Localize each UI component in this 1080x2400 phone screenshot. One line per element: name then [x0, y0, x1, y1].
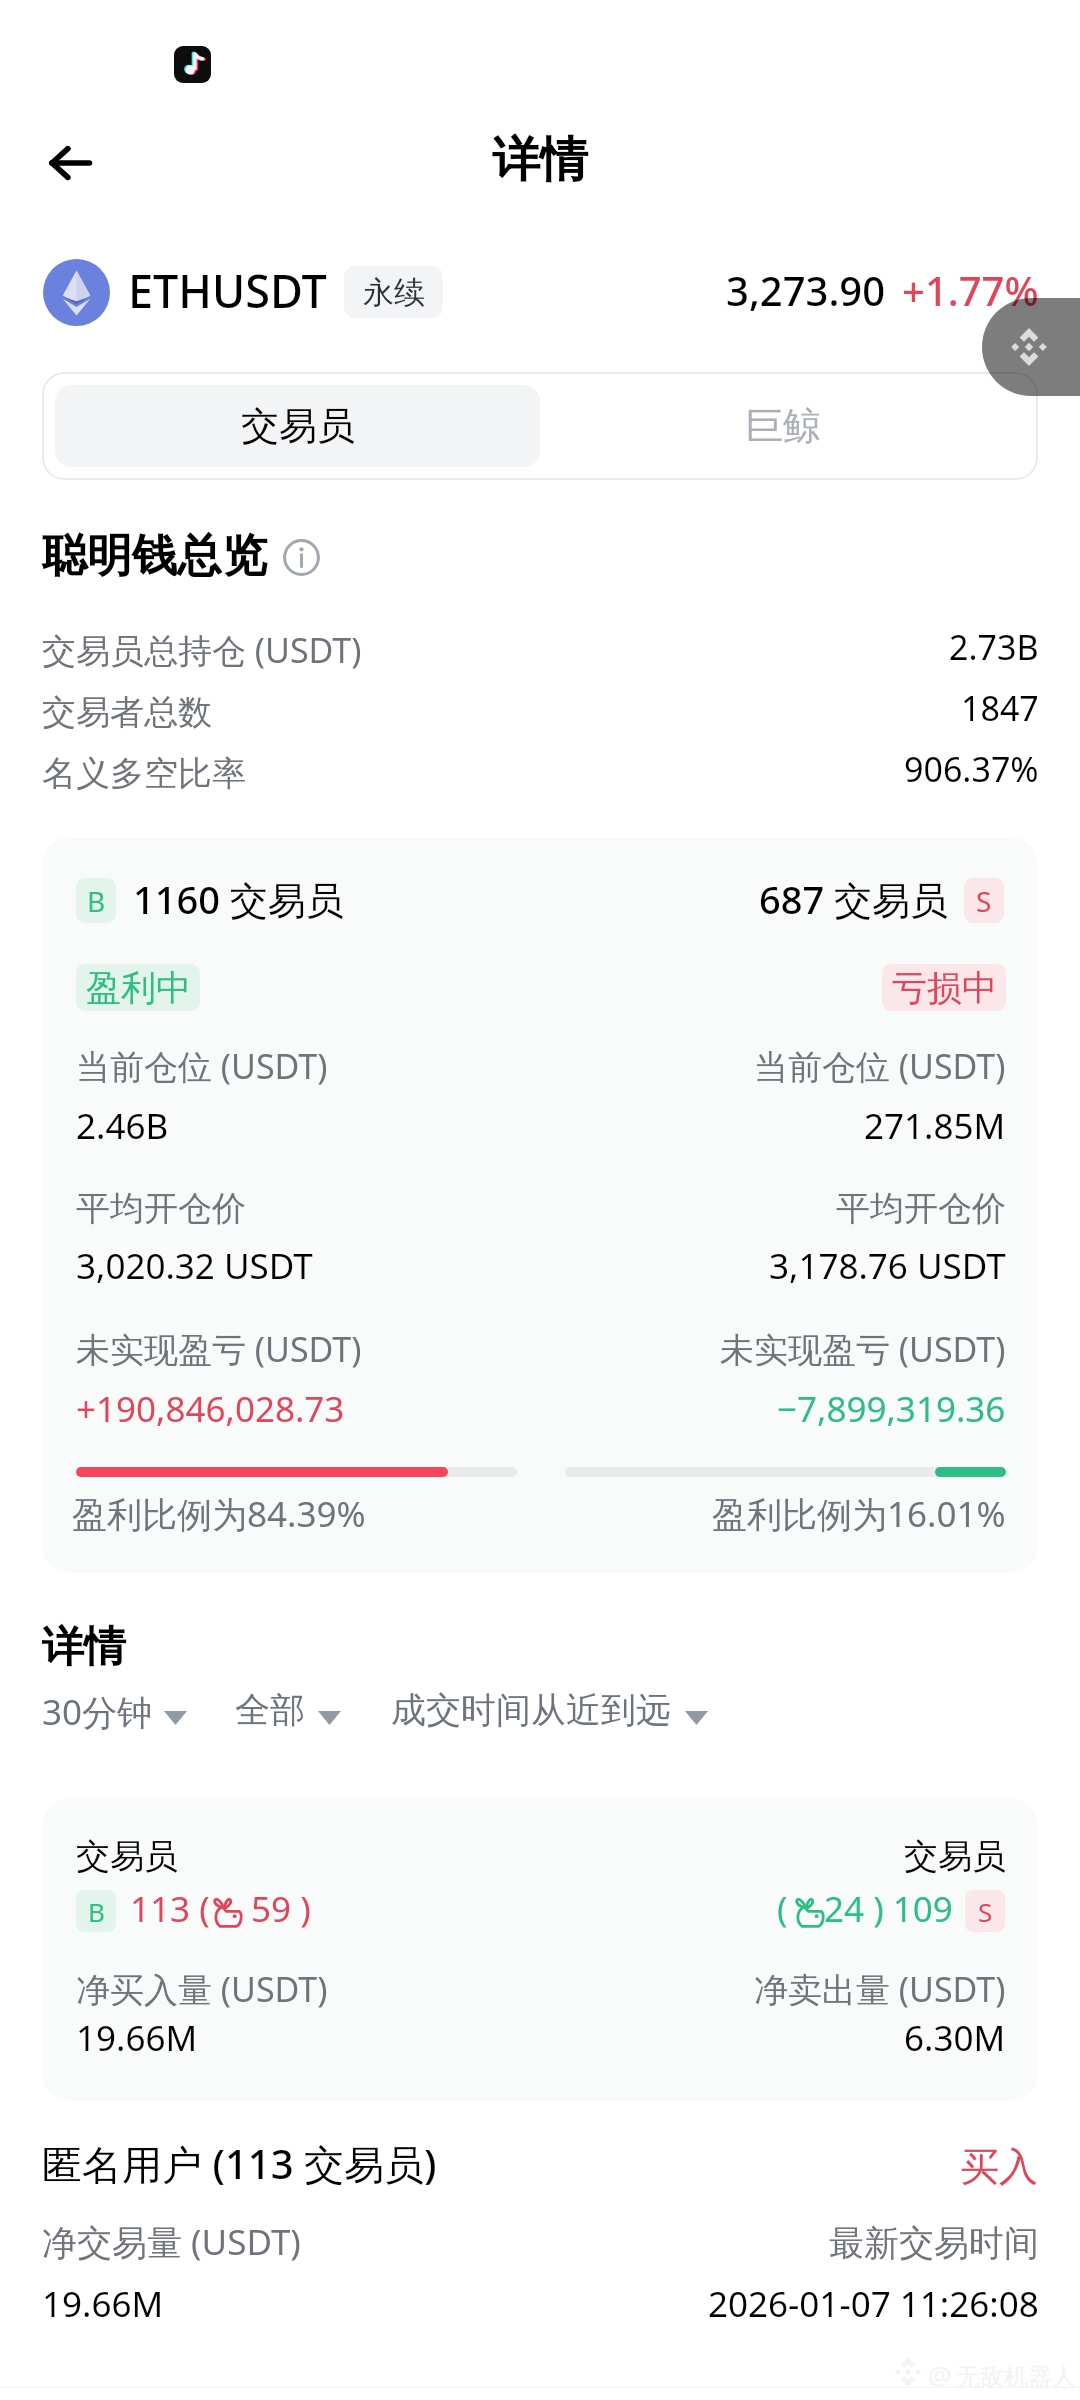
staticText: 当前仓位 (USDT) [76, 1043, 328, 1089]
staticText: 271.85M [864, 1102, 1006, 1150]
staticText: 全部 [235, 1688, 305, 1732]
staticText: 19.66M [42, 2280, 164, 2328]
staticText: 1847 [961, 685, 1039, 731]
staticText: −7,899,319.36 [777, 1385, 1006, 1433]
staticText: B [88, 1894, 105, 1929]
staticText: ( [777, 1885, 788, 1933]
staticText: 交易员 [241, 402, 355, 450]
button[interactable]: Back [27, 120, 113, 206]
staticText: 3,020.32 USDT [76, 1242, 313, 1290]
staticText: 名义多空比率 [42, 752, 246, 795]
staticText: 3,178.76 USDT [769, 1242, 1006, 1290]
staticText: 当前仓位 (USDT) [754, 1043, 1006, 1089]
staticText: 3,273.90 [726, 263, 886, 317]
staticText: 详情 [42, 1621, 126, 1674]
staticText: 未实现盈亏 (USDT) [720, 1326, 1006, 1372]
staticText: 永续 [363, 273, 425, 312]
staticText: 交易员总持仓 (USDT) [42, 627, 362, 673]
staticText: 19.66M [76, 2014, 198, 2062]
staticText: 906.37% [904, 746, 1039, 792]
staticText: 最新交易时间 [829, 2221, 1039, 2265]
button[interactable]: Binance shortcut [982, 298, 1080, 396]
staticText: 交易者总数 [42, 691, 212, 734]
staticText: 交易员 [76, 1835, 178, 1878]
staticText: 盈利比例为84.39% [72, 1490, 366, 1538]
staticText: 交易员 [904, 1835, 1006, 1878]
staticText: @ [928, 2357, 952, 2392]
staticText: 2026-01-07 11:26:08 [708, 2280, 1039, 2328]
staticText: 30分钟 [42, 1688, 153, 1736]
staticText: 59 ) [251, 1885, 311, 1933]
staticText: 未实现盈亏 (USDT) [76, 1326, 362, 1372]
staticText: B [87, 882, 106, 920]
staticText: ETHUSDT [128, 260, 327, 321]
staticText: 净买入量 (USDT) [76, 1966, 328, 2012]
staticText: 详情 [492, 130, 588, 190]
staticText: 平均开仓价 [836, 1187, 1006, 1230]
staticText: 盈利中 [86, 966, 191, 1010]
button[interactable]: 30分钟 [32, 1683, 195, 1745]
staticText: +190,846,028.73 [76, 1385, 345, 1433]
staticText: 聪明钱总览 [42, 528, 267, 585]
staticText: 盈利比例为16.01% [712, 1490, 1006, 1538]
staticText: 净卖出量 (USDT) [754, 1966, 1006, 2012]
button[interactable]: 交易员 [55, 385, 540, 467]
staticText: 无敌机器人 [956, 2362, 1076, 2392]
staticText: 巨鲸 [745, 402, 821, 450]
staticText: 113 ( [130, 1885, 210, 1933]
staticText: 2.46B [76, 1102, 169, 1150]
staticText: 买入 [960, 2142, 1038, 2191]
staticText: 平均开仓价 [76, 1187, 246, 1230]
button[interactable]: 成交时间从近到远 [381, 1683, 716, 1745]
staticText: 匿名用户 (113 交易员) [42, 2136, 437, 2191]
staticText: 24 ) 109 [824, 1885, 953, 1933]
staticText: S [976, 882, 992, 920]
button[interactable]: 巨鲸 [540, 385, 1025, 467]
staticText: 2.73B [949, 624, 1039, 670]
staticText: 成交时间从近到远 [391, 1688, 671, 1732]
staticText: 6.30M [904, 2014, 1006, 2062]
button[interactable]: 全部 [225, 1683, 349, 1745]
staticText: +1.77% [902, 263, 1039, 317]
staticText: 亏损中 [892, 966, 997, 1010]
button[interactable]: Info [281, 537, 321, 577]
staticText: 687 交易员 [759, 873, 949, 925]
staticText: 净交易量 (USDT) [42, 2218, 301, 2266]
staticText: 1160 交易员 [133, 873, 344, 925]
staticText: S [978, 1894, 993, 1929]
